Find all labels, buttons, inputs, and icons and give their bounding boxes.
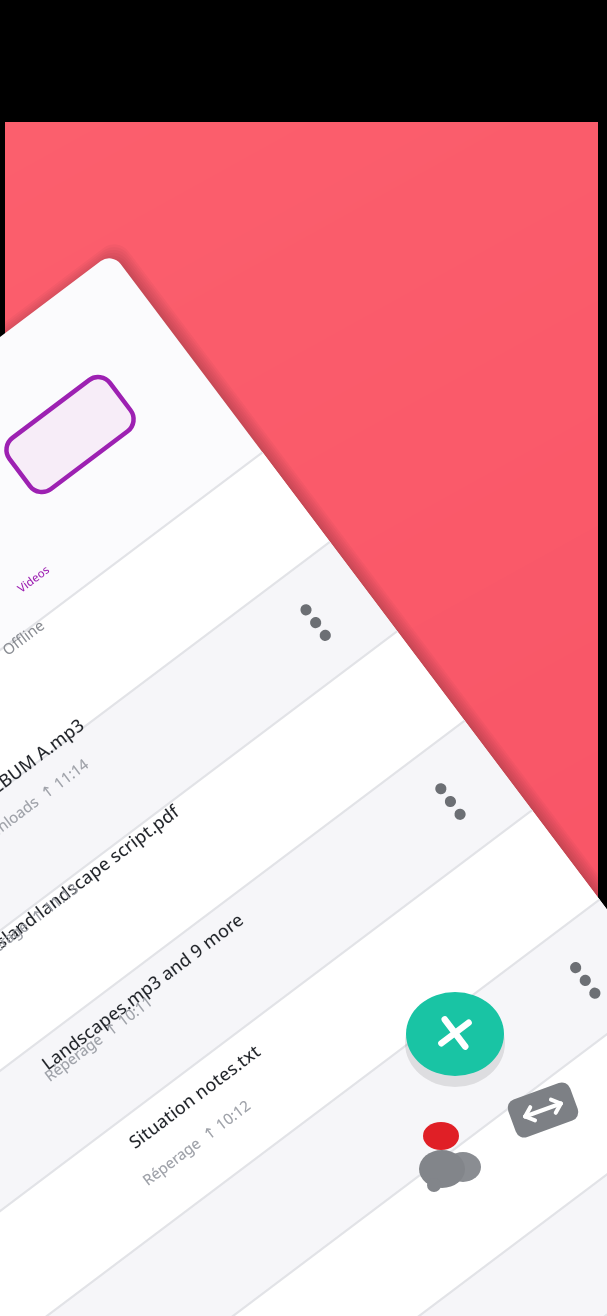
staticText: Landscapes.mp3 and 9 more — [36, 907, 249, 1076]
staticText: Réperage ↑ 10:11 — [40, 991, 157, 1085]
staticText: Downloads ↑ 11:14 — [0, 753, 93, 855]
staticText: Situation notes.txt — [123, 1039, 265, 1154]
staticText: ALBUM A.mp3 — [0, 712, 89, 806]
staticText: Réperage ↑ 11:13 — [0, 878, 83, 972]
button[interactable]: Chats, 2 unread — [411, 1124, 481, 1184]
staticText: Island landscape script.pdf — [0, 799, 184, 958]
staticText: Videos — [14, 561, 53, 596]
staticText: Réperage ↑ 10:12 — [138, 1095, 255, 1189]
staticText: Offline — [0, 615, 48, 659]
button[interactable]: Add — [407, 990, 503, 1074]
button[interactable]: Transfers — [510, 1074, 578, 1124]
